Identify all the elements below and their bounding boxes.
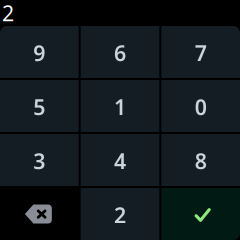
staticText: 4 bbox=[114, 147, 126, 175]
button[interactable]: Delete bbox=[0, 188, 79, 240]
staticText: 3 bbox=[33, 147, 45, 175]
button[interactable]: 8 bbox=[161, 134, 240, 186]
button[interactable]: 3 bbox=[0, 134, 79, 186]
button[interactable]: 0 bbox=[161, 80, 240, 132]
staticText: 8 bbox=[195, 147, 207, 175]
button[interactable]: 9 bbox=[0, 26, 79, 78]
button[interactable]: 1 bbox=[81, 80, 159, 132]
button[interactable]: 2 bbox=[81, 188, 159, 240]
staticText: 7 bbox=[195, 39, 207, 67]
staticText: 9 bbox=[33, 39, 45, 67]
button[interactable]: 6 bbox=[81, 26, 159, 78]
staticText: 6 bbox=[114, 39, 126, 67]
button[interactable]: 5 bbox=[0, 80, 79, 132]
button[interactable]: 4 bbox=[81, 134, 159, 186]
staticText: 1 bbox=[114, 93, 126, 121]
staticText: 0 bbox=[195, 93, 207, 121]
button[interactable]: 7 bbox=[161, 26, 240, 78]
staticText: 2 bbox=[114, 201, 126, 229]
staticText: 5 bbox=[33, 93, 45, 121]
button[interactable]: Confirm bbox=[161, 188, 240, 240]
staticText: 2 bbox=[2, 0, 14, 27]
